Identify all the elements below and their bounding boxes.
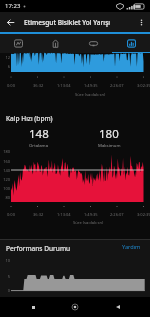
staticText: 1:13:04 (57, 83, 71, 88)
button[interactable]: Recent apps (23, 297, 43, 317)
staticText: Performans Durumu (6, 244, 71, 253)
staticText: 2:26:07 (110, 83, 124, 88)
button[interactable]: Elevation (37, 34, 74, 53)
staticText: 0:00 (7, 212, 15, 217)
staticText: Süre (sa:dak:sn) (75, 92, 106, 98)
staticText: 6 (0, 64, 10, 69)
staticText: 140 (0, 168, 10, 173)
staticText: 120 (0, 177, 10, 182)
staticText: 5 (0, 274, 10, 279)
staticText: 10 (0, 258, 10, 263)
button[interactable]: More options (132, 13, 150, 31)
staticText: 3:02:39 (137, 83, 150, 88)
staticText: 36:32 (33, 83, 44, 88)
staticText: 3:02:39 (137, 212, 150, 217)
staticText: Ortalama (29, 142, 49, 148)
staticText: 180 (0, 149, 10, 154)
button[interactable]: Laps (74, 34, 112, 53)
button[interactable]: Yardım (122, 243, 141, 251)
staticText: Kalp Hızı (bpm) (6, 114, 53, 123)
staticText: 100 (0, 186, 10, 191)
button[interactable]: Charts (112, 34, 150, 53)
button[interactable]: Back (108, 297, 128, 317)
staticText: 2:26:07 (110, 212, 124, 217)
staticText: Süre (sa:dak:sn) (73, 220, 104, 226)
staticText: 160 (0, 159, 10, 164)
staticText: 80 (0, 195, 10, 200)
staticText: 1:49:35 (84, 83, 98, 88)
staticText: Yardım (122, 243, 141, 251)
staticText: 180 (99, 126, 119, 142)
staticText: 1:49:35 (84, 212, 98, 217)
staticText: 12 (0, 55, 10, 60)
staticText: Maksimum (98, 142, 121, 148)
staticText: 36:32 (33, 212, 44, 217)
button[interactable]: Back (0, 12, 20, 32)
staticText: 17:23 (5, 2, 21, 10)
button[interactable]: Map (0, 34, 37, 53)
staticText: 1:13:04 (57, 212, 71, 217)
button[interactable]: Home (65, 297, 85, 317)
staticText: 148 (29, 126, 49, 142)
staticText: 0 (0, 288, 10, 293)
staticText: Etimesgut Bisiklet Yol Yarışı (24, 18, 111, 27)
staticText: 0:00 (7, 83, 15, 88)
